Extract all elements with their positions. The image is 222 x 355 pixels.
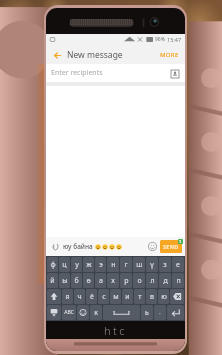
button[interactable]: Enter recipients [46, 64, 185, 82]
staticText: ү [150, 260, 154, 270]
staticText: л [150, 276, 155, 286]
staticText: MORE [160, 51, 179, 59]
button[interactable]: Backspace [170, 289, 184, 304]
button[interactable]: н [107, 257, 119, 272]
staticText: к [94, 308, 98, 318]
button[interactable]: ч [74, 289, 85, 304]
button[interactable]: Add from contacts [169, 68, 180, 79]
button[interactable]: ө [83, 273, 94, 288]
button[interactable]: MORE [158, 49, 181, 61]
button[interactable]: Emoji [77, 305, 89, 320]
staticText: 15:47 [167, 36, 182, 43]
staticText: htc [104, 323, 128, 338]
button[interactable]: Back [50, 48, 64, 62]
button[interactable]: б [71, 273, 82, 288]
staticText: ж [86, 260, 92, 270]
staticText: н [111, 260, 116, 270]
button[interactable]: ү [146, 257, 158, 272]
staticText: о [137, 276, 142, 286]
staticText: 1 [179, 239, 182, 244]
staticText: д [163, 276, 168, 286]
button[interactable]: Hide keyboard [47, 305, 61, 320]
staticText: ш [136, 260, 143, 270]
staticText: ABC [64, 309, 74, 316]
button[interactable]: я [62, 289, 73, 304]
staticText: юу байна [63, 242, 93, 251]
button[interactable]: ф [47, 257, 58, 272]
staticText: я [65, 292, 70, 302]
button[interactable]: Emoji [146, 240, 159, 253]
button[interactable]: л [146, 273, 158, 288]
button[interactable]: ABC [62, 305, 76, 320]
staticText: 96% [155, 36, 165, 43]
button[interactable]: з [159, 257, 171, 272]
button[interactable]: э [95, 257, 106, 272]
staticText: п [176, 276, 181, 286]
staticText: ч [77, 292, 82, 302]
staticText: ф [50, 260, 56, 270]
button[interactable]: с [98, 289, 109, 304]
button[interactable]: ю [158, 289, 169, 304]
staticText: с [102, 292, 106, 302]
button[interactable]: ш [133, 257, 145, 272]
button[interactable]: е [172, 257, 184, 272]
staticText: г [124, 260, 128, 270]
button[interactable]: п [172, 273, 184, 288]
staticText: х [111, 276, 115, 286]
button[interactable]: г [120, 257, 132, 272]
staticText: в [150, 292, 154, 302]
button[interactable]: ё [86, 289, 97, 304]
staticText: у [75, 260, 79, 270]
button[interactable]: м [110, 289, 121, 304]
staticText: ө [86, 276, 91, 286]
staticText: ц [62, 260, 67, 270]
button[interactable]: й [47, 273, 58, 288]
button[interactable]: Attach [49, 240, 62, 253]
staticText: ё [90, 292, 94, 302]
staticText: б [74, 276, 79, 286]
button[interactable]: в [146, 289, 157, 304]
button[interactable]: т [134, 289, 145, 304]
button[interactable]: ц [59, 257, 70, 272]
staticText: SEND [163, 243, 179, 250]
button[interactable]: и [122, 289, 133, 304]
button[interactable]: SEND [160, 240, 182, 253]
button[interactable]: ж [83, 257, 94, 272]
staticText: р [124, 276, 129, 286]
staticText: New message [67, 49, 123, 61]
staticText: й [50, 276, 55, 286]
button[interactable]: д [159, 273, 171, 288]
staticText: ю [161, 292, 167, 302]
button[interactable]: . [154, 305, 166, 320]
button[interactable]: Enter [167, 305, 184, 320]
button[interactable]: о [133, 273, 145, 288]
button[interactable]: ь [141, 305, 153, 320]
button[interactable]: Shift [47, 289, 61, 304]
staticText: э [99, 260, 103, 270]
button[interactable]: к [90, 305, 102, 320]
staticText: Enter recipients [51, 68, 103, 78]
button[interactable]: ы [59, 273, 70, 288]
staticText: з [163, 260, 167, 270]
staticText: ь [145, 308, 149, 318]
button[interactable]: юу байна [63, 242, 146, 251]
staticText: т [138, 292, 142, 302]
button[interactable]: у [71, 257, 82, 272]
staticText: а [99, 276, 103, 286]
button[interactable]: р [120, 273, 132, 288]
button[interactable]: х [107, 273, 119, 288]
button[interactable]: Space [103, 305, 140, 320]
staticText: ы [62, 276, 68, 286]
button[interactable]: а [95, 273, 106, 288]
staticText: м [113, 292, 119, 302]
staticText: и [125, 292, 130, 302]
staticText: . [159, 309, 161, 316]
staticText: е [176, 260, 180, 270]
